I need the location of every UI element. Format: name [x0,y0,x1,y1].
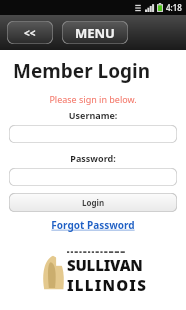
button[interactable]: MENU [62,21,128,44]
staticText: Username: [0,109,186,121]
staticText: SULLIVAN [67,255,143,275]
button[interactable]: Forgot Password [0,218,186,232]
staticText: Login [82,197,105,208]
staticText: Member Login [13,58,151,84]
staticText: ILLINOIS [67,275,147,295]
staticText: MENU [75,24,115,42]
button[interactable]: Login [9,193,177,212]
button[interactable]: << [7,21,53,44]
staticText: Please sign in below. [0,93,186,105]
staticText: << [24,26,36,40]
button[interactable] [9,168,177,186]
button[interactable] [9,125,177,143]
staticText: Password: [0,152,186,164]
staticText: 4:18 [166,2,182,13]
